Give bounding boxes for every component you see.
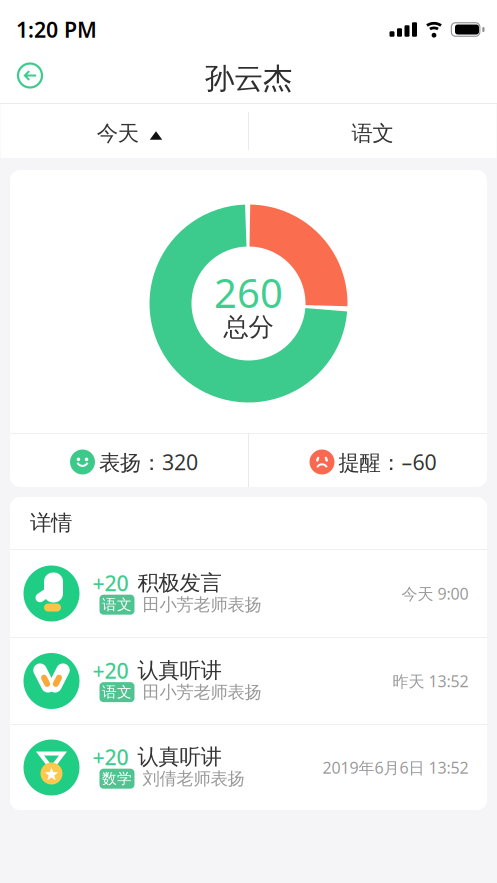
staticText: 提醒：–60: [338, 448, 436, 476]
button[interactable]: +20: [10, 638, 487, 724]
button[interactable]: 表扬：320: [10, 434, 248, 487]
button[interactable]: +20: [10, 725, 487, 810]
button[interactable]: 今天: [0, 104, 248, 158]
button[interactable]: +20: [10, 550, 487, 637]
staticText: 积极发言: [137, 570, 221, 596]
staticText: 详情: [30, 510, 72, 536]
staticText: 田小芳老师表扬: [142, 681, 261, 703]
staticText: 表扬：320: [99, 448, 198, 476]
staticText: 数学: [102, 770, 132, 788]
staticText: 今天: [97, 120, 139, 147]
staticText: 2019年6月6日 13:52: [322, 757, 468, 778]
button[interactable]: 提醒：–60: [249, 434, 487, 487]
staticText: 1:20 PM: [16, 15, 97, 44]
staticText: 260: [214, 266, 283, 319]
button[interactable]: 语文: [248, 104, 496, 158]
staticText: +20: [92, 569, 128, 597]
button[interactable]: [17, 62, 43, 88]
staticText: 孙云杰: [205, 60, 292, 96]
staticText: 昨天 13:52: [392, 670, 468, 692]
staticText: 总分: [223, 311, 273, 342]
staticText: 语文: [102, 596, 132, 614]
staticText: +20: [92, 656, 128, 684]
staticText: 刘倩老师表扬: [142, 768, 244, 789]
staticText: +20: [92, 743, 128, 771]
staticText: 语文: [102, 683, 132, 701]
staticText: 田小芳老师表扬: [142, 594, 261, 615]
staticText: 语文: [351, 120, 393, 147]
staticText: 今天 9:00: [401, 583, 468, 604]
staticText: 认真听讲: [137, 657, 221, 683]
staticText: 认真听讲: [137, 744, 221, 770]
